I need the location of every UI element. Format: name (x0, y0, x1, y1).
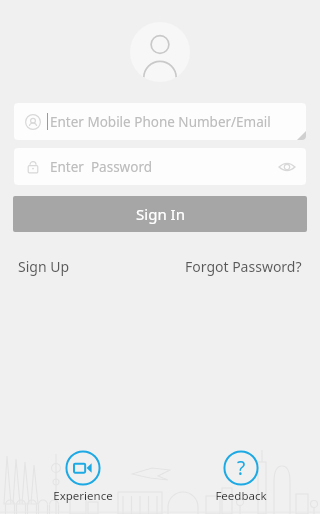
button[interactable]: Profile avatar (130, 22, 190, 82)
button[interactable]: Show password (277, 157, 297, 177)
button[interactable]: Forgot Password? (160, 253, 306, 280)
button[interactable]: Sign In (13, 196, 307, 232)
staticText: Sign Up (18, 257, 70, 276)
staticText: Enter Password (50, 158, 152, 176)
button[interactable]: Enter Mobile Phone Number/Email (14, 103, 306, 140)
staticText: Enter Mobile Phone Number/Email (50, 113, 271, 131)
button[interactable]: Enter Password (14, 148, 306, 185)
staticText: Sign In (136, 204, 185, 224)
button[interactable]: Sign Up (14, 253, 74, 280)
button[interactable]: ? (211, 450, 271, 504)
staticText: ? (237, 455, 246, 481)
staticText: Feedback (215, 488, 267, 504)
staticText: Experience (53, 488, 113, 504)
button[interactable]: Experience (53, 450, 113, 504)
staticText: Forgot Password? (185, 257, 302, 276)
